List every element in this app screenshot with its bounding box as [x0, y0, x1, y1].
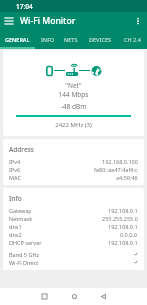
staticText: MAC	[9, 174, 21, 181]
button[interactable]: dns1	[3, 222, 144, 230]
staticText: Address	[9, 145, 34, 154]
button[interactable]: MAC	[3, 173, 144, 181]
staticText: GENERAL	[5, 36, 30, 43]
button[interactable]: Netmask	[3, 214, 144, 222]
staticText: Band 5 GHz	[9, 251, 40, 258]
staticText: 192.168.0.1	[108, 239, 138, 246]
button[interactable]: IPv6	[3, 165, 144, 173]
button[interactable]: IPv4	[3, 157, 144, 165]
button[interactable]: CH 2.4	[117, 30, 147, 49]
staticText: fe80::ae47:4af4:c	[94, 166, 138, 173]
button[interactable]: Gateway	[3, 206, 144, 214]
button[interactable]: Navigation menu	[0, 12, 18, 30]
staticText: "Net"	[3, 81, 144, 90]
staticText: Netmask	[9, 215, 33, 222]
button[interactable]: Back	[93, 288, 113, 305]
staticText: IPv4	[9, 158, 21, 165]
staticText: INFO	[41, 36, 55, 43]
button[interactable]: Wi-Fi Direct	[3, 258, 144, 266]
staticText: dns1	[9, 223, 22, 230]
staticText: 192.168.0.1	[108, 207, 138, 214]
button[interactable]: dns2	[3, 230, 144, 238]
staticText: CH 2.4	[124, 36, 141, 43]
button[interactable]: DHCP server	[3, 238, 144, 246]
button[interactable]: Band 5 GHz	[3, 250, 144, 258]
staticText: 17:04	[16, 2, 33, 11]
staticText: -48 dBm	[3, 102, 144, 111]
staticText: 144 Mbps	[3, 90, 144, 99]
button[interactable]: More options	[129, 12, 147, 30]
staticText: 192.168.0.1	[108, 223, 138, 230]
staticText: DHCP server	[9, 239, 42, 246]
staticText: DEVICES	[89, 36, 111, 43]
staticText: 192.168.0.100	[102, 158, 138, 165]
button[interactable]: INFO	[35, 30, 60, 49]
staticText: NETS	[64, 36, 78, 43]
staticText: Gateway	[9, 207, 32, 214]
staticText: Info	[9, 194, 22, 203]
button[interactable]: Home	[64, 288, 84, 305]
staticText: IPv6	[9, 166, 21, 173]
button[interactable]: NETS	[60, 30, 82, 49]
staticText: 255.255.255.0	[102, 215, 138, 222]
staticText: dns2	[9, 231, 22, 238]
staticText: Wi-Fi Direct	[9, 259, 39, 266]
staticText: 2422 MHz (3)	[3, 121, 144, 129]
staticText: 0.0.0.0	[120, 231, 138, 238]
button[interactable]: Recent apps	[34, 288, 54, 305]
staticText: Wi-Fi Monitor	[20, 15, 76, 27]
button[interactable]: DEVICES	[82, 30, 117, 49]
button[interactable]: GENERAL	[0, 30, 35, 49]
staticText: a4:50:46	[116, 174, 138, 181]
